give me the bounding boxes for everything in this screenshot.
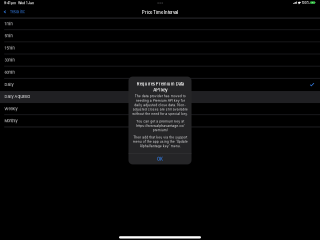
- button[interactable]: OK: [128, 154, 191, 164]
- button[interactable]: 30min: [0, 55, 320, 67]
- staticText: Weekly: [4, 106, 17, 111]
- staticText: The data provider has moved to needing a…: [132, 94, 188, 116]
- staticText: Daily: [4, 82, 13, 87]
- staticText: Requires Premium Data API key: [136, 81, 183, 92]
- button[interactable]: 60min: [0, 67, 320, 79]
- staticText: Price Time Interval: [142, 10, 178, 15]
- staticText: 1min: [4, 21, 12, 26]
- button[interactable]: Tesla inc: [0, 0, 56, 11]
- button[interactable]: 1min: [0, 18, 320, 30]
- button[interactable]: Weekly: [0, 103, 320, 115]
- button[interactable]: Daily Adjusted: [0, 91, 320, 103]
- staticText: 60min: [4, 70, 14, 75]
- staticText: 100%: [302, 1, 310, 5]
- button[interactable]: Monthly: [0, 115, 320, 127]
- staticText: Monthly: [4, 119, 17, 123]
- staticText: 15min: [4, 46, 14, 50]
- button[interactable]: 15min: [0, 42, 320, 55]
- staticText: You can get a premium key at https://www…: [136, 119, 184, 132]
- staticText: Tesla inc: [10, 9, 25, 14]
- staticText: Daily Adjusted: [4, 94, 29, 99]
- staticText: 5min: [4, 34, 12, 38]
- button[interactable]: Multitasking controls: [157, 2, 163, 4]
- staticText: 30min: [4, 58, 14, 63]
- staticText: Then add that key via the support menu o…: [132, 135, 187, 148]
- button[interactable]: Daily: [0, 79, 320, 91]
- button[interactable]: 5min: [0, 30, 320, 42]
- staticText: 9:41 pm Wed 1 Jan: [4, 1, 34, 5]
- staticText: OK: [157, 157, 163, 162]
